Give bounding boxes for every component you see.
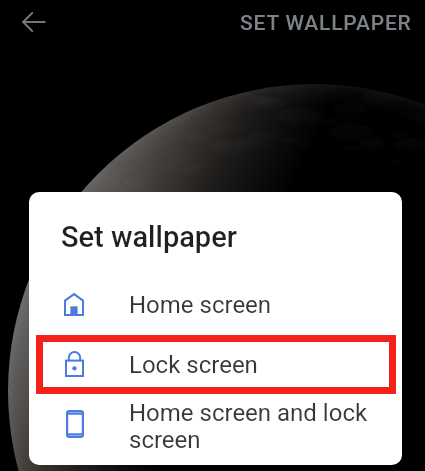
staticText: SET WALLPAPER [240, 11, 412, 36]
button[interactable]: Back [12, 0, 56, 44]
button[interactable]: SET WALLPAPER [227, 1, 425, 46]
staticText: Lock screen [129, 351, 258, 379]
button[interactable]: Home screen and lock screen [29, 394, 402, 457]
button[interactable]: Home screen [29, 274, 402, 334]
staticText: Home screen [129, 291, 272, 319]
staticText: Set wallpaper [61, 220, 237, 254]
button[interactable]: Lock screen [29, 334, 402, 394]
staticText: Home screen and lock screen [129, 399, 372, 454]
